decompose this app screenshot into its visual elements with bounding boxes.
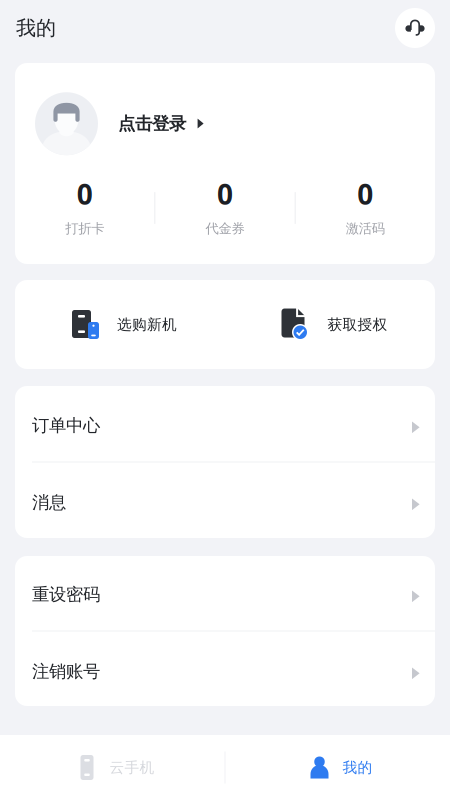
staticText: 代金券 <box>205 220 244 237</box>
staticText: 激活码 <box>346 220 385 237</box>
staticText: 打折卡 <box>65 220 104 237</box>
staticText: 注销账号 <box>32 661 100 682</box>
button[interactable]: 订单中心 <box>15 385 435 461</box>
staticText: 我的 <box>342 758 372 776</box>
button[interactable]: 消息 <box>15 462 435 538</box>
staticText: 0 <box>357 175 373 212</box>
button[interactable]: Customer service <box>395 8 435 48</box>
staticText: 0 <box>217 175 233 212</box>
staticText: 0 <box>77 175 93 212</box>
staticText: 云手机 <box>109 758 154 776</box>
button[interactable]: 云手机 <box>0 735 225 800</box>
staticText: 订单中心 <box>32 415 100 436</box>
button[interactable]: 选购新机 <box>15 280 225 369</box>
button[interactable]: 获取授权 <box>225 280 435 369</box>
button[interactable]: 0 <box>155 175 295 237</box>
staticText: 消息 <box>32 492 66 513</box>
button[interactable]: 点击登录 <box>15 66 435 175</box>
button[interactable]: 0 <box>15 175 154 237</box>
staticText: 点击登录 <box>118 113 186 134</box>
button[interactable]: 重设密码 <box>15 554 435 630</box>
staticText: 获取授权 <box>327 315 387 333</box>
staticText: 选购新机 <box>117 315 177 333</box>
button[interactable]: 注销账号 <box>15 631 435 707</box>
button[interactable]: 0 <box>296 175 435 237</box>
staticText: 重设密码 <box>32 584 100 605</box>
button[interactable]: 我的 <box>225 735 450 800</box>
staticText: 我的 <box>16 16 56 40</box>
